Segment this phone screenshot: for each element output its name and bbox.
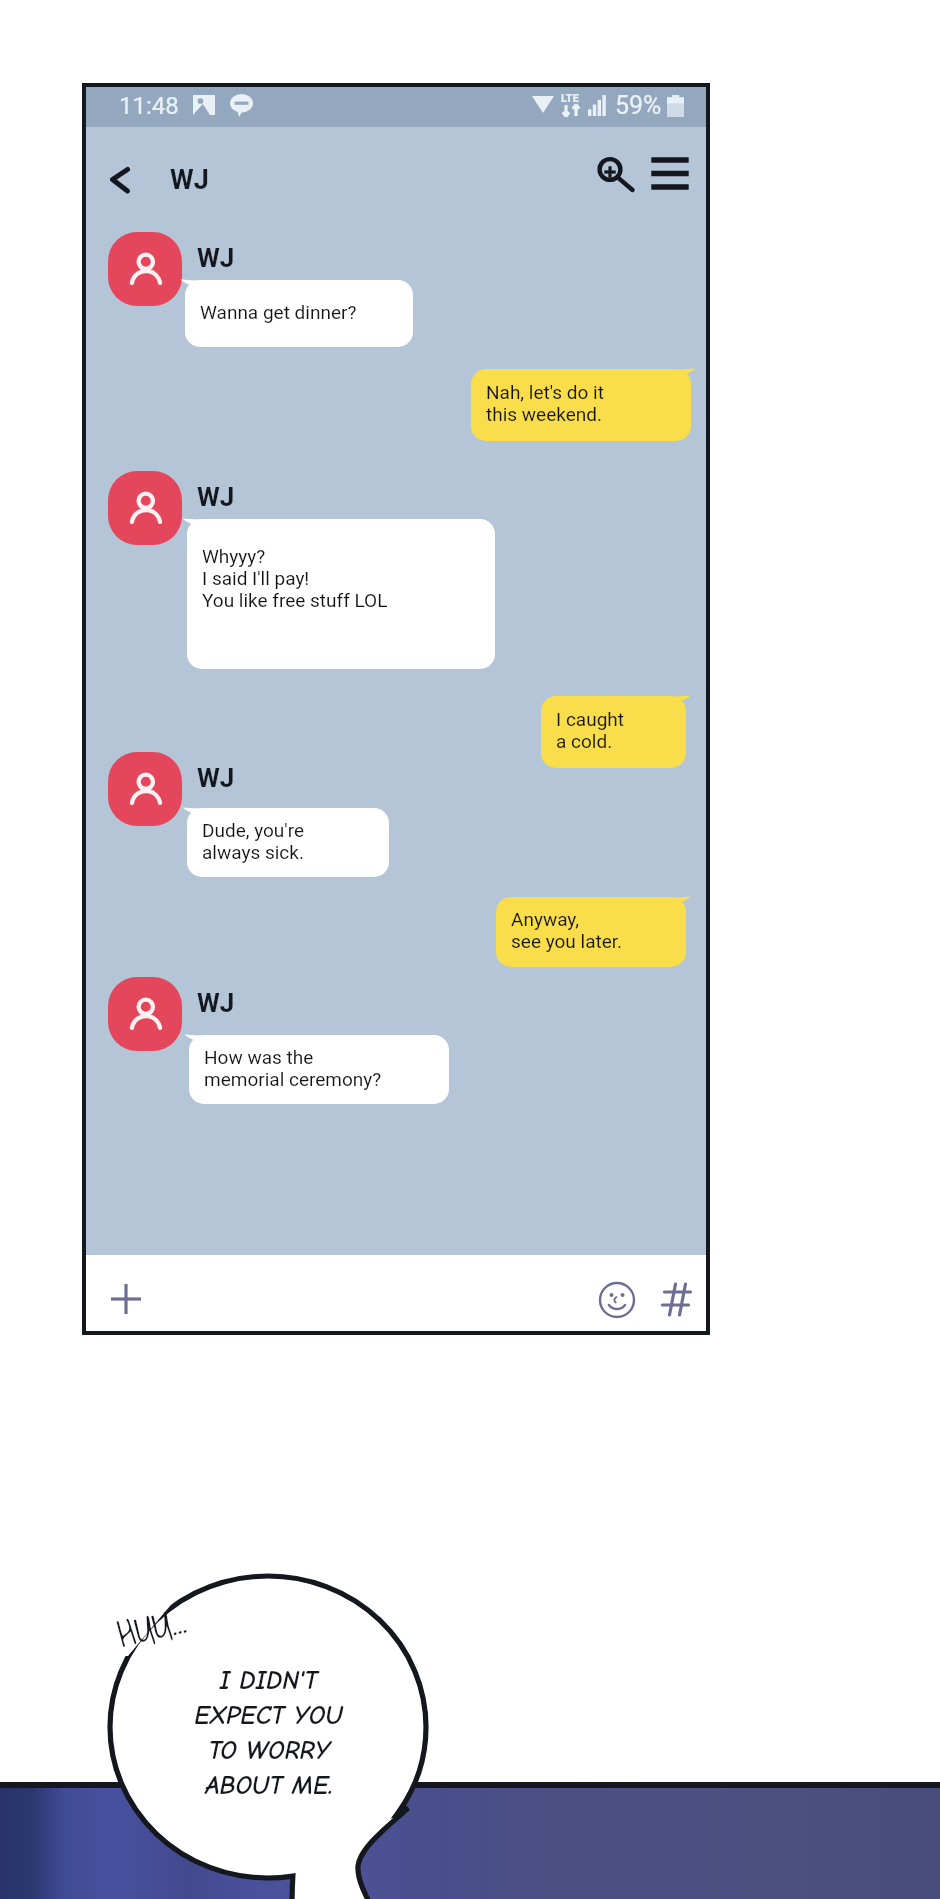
staticText: see you later. [511, 930, 623, 952]
staticText: WJ [197, 763, 235, 793]
button[interactable]: Whyyy? [187, 519, 495, 669]
staticText: WJ [197, 988, 235, 1018]
staticText: Nah, let's do it [486, 381, 604, 403]
staticText: WJ [170, 164, 209, 196]
staticText: I caught [556, 708, 624, 730]
staticText: TO WORRY [208, 1736, 330, 1771]
button[interactable]: Wanna get dinner? [185, 280, 413, 347]
staticText: this weekend. [486, 403, 602, 425]
staticText: Dude, you're [202, 819, 305, 841]
button[interactable]: Profile photo of WJ [108, 977, 182, 1051]
staticText: WJ [197, 243, 235, 273]
staticText: 11:48 [119, 92, 179, 120]
button[interactable]: Back [94, 154, 144, 204]
button[interactable]: I caught [541, 696, 686, 768]
staticText: Anyway, [511, 908, 580, 930]
staticText: ABOUT ME. [205, 1771, 333, 1806]
button[interactable]: Profile photo of WJ [108, 471, 182, 545]
button[interactable]: How was the [189, 1035, 449, 1104]
button[interactable]: Profile photo of WJ [108, 752, 182, 826]
staticText: I DIDN'T [219, 1666, 318, 1701]
staticText: I said I'll pay! [202, 567, 310, 589]
staticText: a cold. [556, 730, 613, 752]
staticText: How was the [204, 1046, 314, 1068]
button[interactable]: Nah, let's do it [471, 369, 691, 441]
button[interactable]: Anyway, [496, 897, 686, 967]
button[interactable]: Menu [644, 145, 696, 197]
button[interactable]: Profile photo of WJ [108, 232, 182, 306]
button[interactable]: Search [585, 144, 635, 194]
staticText: HUU... [111, 1586, 192, 1664]
staticText: LTE [561, 92, 579, 105]
staticText: Wanna get dinner? [200, 301, 357, 323]
staticText: 59% [615, 91, 662, 120]
staticText: always sick. [202, 841, 304, 863]
button[interactable]: Emoji [595, 1278, 639, 1322]
staticText: WJ [197, 482, 235, 512]
staticText: Whyyy? [202, 545, 266, 567]
button[interactable]: Add attachment [104, 1277, 148, 1321]
button[interactable]: Dude, you're [187, 808, 389, 877]
staticText: memorial ceremony? [204, 1068, 382, 1090]
button[interactable]: Hashtag [653, 1278, 697, 1322]
staticText: You like free stuff LOL [202, 589, 388, 611]
staticText: EXPECT YOU [194, 1701, 343, 1736]
